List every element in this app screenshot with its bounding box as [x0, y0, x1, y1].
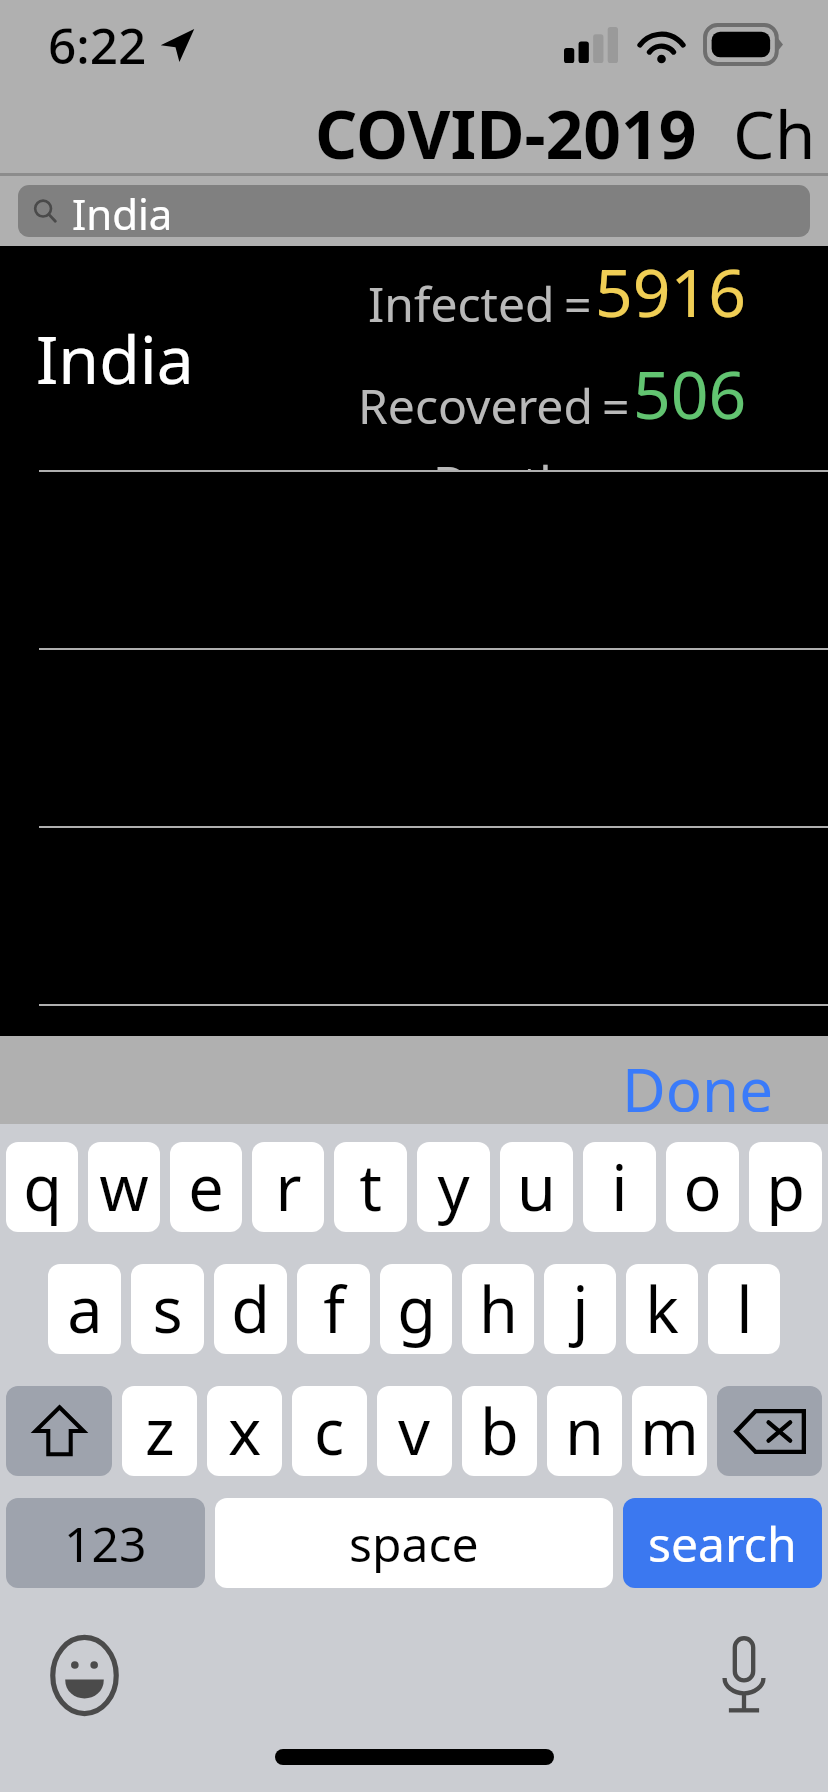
button[interactable]: k: [626, 1264, 698, 1354]
button[interactable]: h: [462, 1264, 534, 1354]
staticText: 123: [64, 1511, 147, 1576]
button[interactable]: y: [417, 1142, 490, 1232]
button[interactable]: p: [749, 1142, 822, 1232]
staticText: i: [611, 1144, 628, 1230]
staticText: z: [145, 1388, 175, 1474]
staticText: u: [517, 1144, 556, 1230]
button[interactable]: n: [547, 1386, 622, 1476]
button[interactable]: z: [122, 1386, 197, 1476]
staticText: Infected: [368, 271, 555, 336]
staticText: w: [99, 1144, 149, 1230]
button[interactable]: Done: [604, 1036, 792, 1124]
button[interactable]: q: [6, 1142, 78, 1232]
staticText: India: [36, 313, 194, 403]
button[interactable]: m: [632, 1386, 707, 1476]
staticText: r: [275, 1144, 302, 1230]
button[interactable]: India: [18, 185, 810, 237]
staticText: search: [648, 1511, 797, 1576]
staticText: d: [231, 1266, 270, 1352]
button[interactable]: f: [297, 1264, 370, 1354]
button[interactable]: search: [623, 1498, 822, 1588]
staticText: b: [480, 1388, 519, 1474]
staticText: t: [359, 1144, 382, 1230]
button[interactable]: Shift: [6, 1386, 112, 1476]
staticText: =: [602, 373, 630, 438]
button[interactable]: e: [170, 1142, 242, 1232]
staticText: a: [67, 1266, 103, 1352]
button[interactable]: j: [544, 1264, 616, 1354]
button[interactable]: Backspace: [717, 1386, 822, 1476]
staticText: Recovered: [358, 373, 593, 438]
staticText: o: [683, 1144, 722, 1230]
button[interactable]: b: [462, 1386, 537, 1476]
staticText: m: [640, 1388, 699, 1474]
staticText: 6:22: [48, 11, 147, 78]
staticText: space: [349, 1511, 479, 1576]
button[interactable]: l: [708, 1264, 780, 1354]
button[interactable]: s: [131, 1264, 204, 1354]
button[interactable]: 123: [6, 1498, 205, 1588]
staticText: =: [564, 271, 592, 336]
staticText: g: [397, 1266, 436, 1352]
button[interactable]: o: [666, 1142, 739, 1232]
button[interactable]: x: [207, 1386, 282, 1476]
staticText: 506: [633, 348, 747, 438]
button[interactable]: r: [252, 1142, 324, 1232]
button[interactable]: g: [380, 1264, 452, 1354]
staticText: q: [23, 1144, 62, 1230]
staticText: f: [323, 1266, 345, 1352]
staticText: c: [314, 1388, 345, 1474]
staticText: k: [645, 1266, 679, 1352]
staticText: n: [565, 1388, 604, 1474]
staticText: x: [228, 1388, 262, 1474]
staticText: s: [152, 1266, 183, 1352]
staticText: e: [188, 1144, 224, 1230]
staticText: Done: [622, 1048, 774, 1112]
button[interactable]: w: [88, 1142, 160, 1232]
staticText: l: [736, 1266, 753, 1352]
button[interactable]: India: [0, 246, 828, 470]
button[interactable]: Dictation: [699, 1630, 789, 1720]
button[interactable]: v: [377, 1386, 452, 1476]
button[interactable]: t: [334, 1142, 407, 1232]
button[interactable]: Check Globally: [733, 88, 828, 164]
staticText: Deaths: [433, 450, 593, 470]
button[interactable]: COVID-2019: [315, 88, 697, 164]
button[interactable]: Emoji: [39, 1630, 129, 1720]
button[interactable]: d: [214, 1264, 287, 1354]
button[interactable]: a: [48, 1264, 121, 1354]
staticText: j: [572, 1266, 589, 1352]
staticText: y: [437, 1144, 470, 1230]
button[interactable]: space: [215, 1498, 613, 1588]
staticText: India: [72, 185, 173, 237]
staticText: h: [479, 1266, 518, 1352]
button[interactable]: i: [583, 1142, 656, 1232]
staticText: v: [398, 1388, 431, 1474]
button[interactable]: c: [292, 1386, 367, 1476]
staticText: p: [766, 1144, 805, 1230]
button[interactable]: u: [500, 1142, 573, 1232]
staticText: 5916: [595, 246, 747, 336]
